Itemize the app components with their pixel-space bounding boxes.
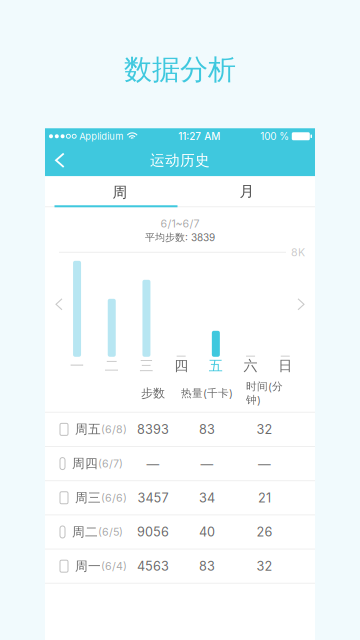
staticText: 26 — [256, 524, 272, 540]
staticText: Applidium — [79, 131, 123, 142]
staticText: 8K — [291, 246, 305, 259]
staticText: 9056 — [137, 524, 169, 540]
staticText: (6/4) — [101, 560, 127, 573]
staticText: 周五 — [75, 421, 101, 437]
staticText: 月 — [239, 182, 254, 200]
staticText: 热量(千卡) — [181, 387, 233, 400]
staticText: 步数 — [141, 386, 165, 401]
staticText: 周 — [112, 183, 127, 201]
staticText: 100 % — [260, 130, 289, 142]
staticText: 运动历史 — [150, 151, 210, 169]
staticText: 8393 — [137, 422, 169, 437]
staticText: (6/6) — [101, 491, 127, 504]
staticText: (6/7) — [98, 457, 123, 470]
staticText: 五 — [209, 357, 223, 375]
staticText: 四 — [174, 357, 188, 375]
staticText: 32 — [256, 558, 272, 574]
staticText: 周一 — [75, 558, 101, 574]
staticText: 4563 — [137, 558, 169, 574]
staticText: 平均步数: 3839 — [145, 231, 215, 244]
staticText: 日 — [278, 357, 292, 375]
staticText: 40 — [199, 524, 215, 540]
staticText: — — [146, 456, 159, 471]
staticText: (6/5) — [98, 525, 123, 538]
staticText: — — [200, 456, 213, 471]
staticText: (6/8) — [101, 423, 127, 436]
staticText: 二 — [105, 357, 119, 375]
staticText: 周二 — [72, 524, 98, 540]
staticText: 32 — [256, 422, 272, 437]
button[interactable]: Previous week — [48, 289, 70, 319]
staticText: 数据分析 — [124, 52, 236, 87]
staticText: 六 — [243, 357, 257, 375]
staticText: 34 — [199, 490, 215, 505]
staticText: 6/1~6/7 — [160, 217, 199, 230]
button[interactable]: Next week — [290, 289, 312, 319]
staticText: 一 — [70, 357, 84, 375]
staticText: 3457 — [137, 490, 168, 505]
staticText: 83 — [199, 422, 215, 437]
button[interactable]: 周三 — [45, 481, 315, 514]
staticText: 21 — [258, 490, 271, 505]
button[interactable]: 周二 — [45, 515, 315, 549]
staticText: 三 — [139, 357, 153, 375]
staticText: — — [258, 456, 271, 471]
button[interactable]: 周五 — [45, 413, 315, 446]
button[interactable]: 月 — [185, 176, 308, 207]
staticText: 时间(分钟) — [246, 380, 283, 407]
staticText: 周四 — [72, 456, 98, 472]
button[interactable]: Back — [45, 145, 81, 176]
button[interactable]: 周四 — [45, 447, 315, 480]
staticText: 11:27 AM — [178, 130, 220, 142]
staticText: 周三 — [75, 490, 101, 506]
staticText: 83 — [199, 558, 215, 574]
button[interactable]: 周一 — [45, 550, 315, 583]
button[interactable]: 周 — [54, 176, 177, 207]
